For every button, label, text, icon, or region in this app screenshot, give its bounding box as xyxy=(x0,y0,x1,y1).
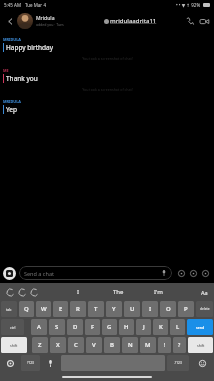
button[interactable]: Back xyxy=(3,14,17,28)
button[interactable]: Q xyxy=(19,301,34,317)
staticText: Z xyxy=(38,341,42,349)
button[interactable]: G xyxy=(102,319,117,335)
staticText: Mridula xyxy=(36,15,55,22)
staticText: MRIDULA xyxy=(3,99,21,104)
button[interactable]: Aa xyxy=(198,286,210,298)
button[interactable]: A xyxy=(31,319,47,335)
staticText: M xyxy=(145,341,151,349)
staticText: Happy birthday xyxy=(6,43,54,52)
button[interactable]: Y xyxy=(106,301,122,317)
button[interactable]: Emoji xyxy=(190,354,214,372)
button[interactable]: Stickers xyxy=(175,267,187,279)
staticText: N xyxy=(128,341,133,349)
button[interactable]: V xyxy=(86,337,102,353)
other: Voice message xyxy=(161,270,167,276)
staticText: S xyxy=(55,323,59,331)
staticText: The xyxy=(113,288,124,296)
staticText: delete xyxy=(200,307,210,311)
staticText: ME xyxy=(3,68,9,73)
button[interactable]: L xyxy=(170,319,185,335)
staticText: You took a screenshot of chat! xyxy=(82,56,133,61)
button[interactable]: Camera xyxy=(3,267,16,280)
button[interactable]: H xyxy=(119,319,134,335)
button[interactable]: U xyxy=(124,301,140,317)
staticText: H xyxy=(124,323,129,331)
staticText: X xyxy=(56,341,60,349)
button[interactable]: X xyxy=(50,337,66,353)
button[interactable]: ? xyxy=(173,337,186,353)
button[interactable]: tab xyxy=(1,301,17,317)
staticText: Q xyxy=(24,305,29,313)
staticText: R xyxy=(76,305,80,313)
staticText: MRIDULA xyxy=(3,37,21,42)
button[interactable]: Z xyxy=(32,337,48,353)
button[interactable]: W xyxy=(36,301,51,317)
button[interactable]: delete xyxy=(196,301,213,317)
button[interactable]: I'm xyxy=(138,288,178,296)
staticText: Send a chat xyxy=(24,270,54,277)
staticText: Yep xyxy=(6,105,18,114)
button[interactable]: E xyxy=(53,301,68,317)
button[interactable]: P xyxy=(178,301,194,317)
staticText: O xyxy=(166,305,171,313)
button[interactable]: ! xyxy=(158,337,171,353)
staticText: T xyxy=(94,305,98,313)
button[interactable]: N xyxy=(122,337,138,353)
staticText: ?123 xyxy=(27,361,34,365)
staticText: ! xyxy=(164,342,166,349)
staticText: E xyxy=(59,305,63,313)
button[interactable]: shift xyxy=(1,337,27,353)
button[interactable]: Video call xyxy=(197,14,211,28)
staticText: mridulaadrita11 xyxy=(110,17,157,25)
staticText: U xyxy=(130,305,135,313)
button[interactable]: R xyxy=(70,301,86,317)
staticText: B xyxy=(110,341,114,349)
staticText: 5:45 AM xyxy=(4,2,22,8)
button[interactable]: K xyxy=(153,319,168,335)
button[interactable]: O xyxy=(160,301,176,317)
button[interactable]: Sticker pack xyxy=(199,267,211,279)
button[interactable]: S xyxy=(49,319,65,335)
staticText: L xyxy=(176,323,180,331)
button[interactable]: shift xyxy=(188,337,213,353)
staticText: K xyxy=(159,323,163,331)
button[interactable]: I xyxy=(59,288,98,296)
staticText: added you · Tues xyxy=(36,22,64,27)
button[interactable]: F xyxy=(85,319,100,335)
staticText: G xyxy=(107,323,112,331)
staticText: F xyxy=(91,323,95,331)
button[interactable]: Happy birthday xyxy=(3,43,54,52)
button[interactable]: ?123 xyxy=(21,355,40,371)
button[interactable]: Undo xyxy=(4,286,16,298)
staticText: Y xyxy=(112,305,116,313)
button[interactable]: I xyxy=(142,301,158,317)
button[interactable]: ctrl xyxy=(1,319,24,335)
staticText: ? xyxy=(178,342,181,349)
staticText: tab xyxy=(6,307,12,312)
button[interactable]: Gallery xyxy=(187,267,199,279)
button[interactable]: D xyxy=(67,319,83,335)
button[interactable]: Call xyxy=(183,14,197,28)
button[interactable]: Thank you xyxy=(3,74,38,83)
button[interactable]: C xyxy=(68,337,84,353)
button[interactable]: B xyxy=(104,337,120,353)
button[interactable]: Profile photo xyxy=(17,13,33,29)
button[interactable]: Redo xyxy=(16,286,28,298)
button[interactable]: Keyboard settings xyxy=(0,354,20,372)
button[interactable]: Voice input xyxy=(41,354,60,372)
button[interactable]: send xyxy=(187,319,213,335)
staticText: C xyxy=(74,341,78,349)
button[interactable]: Clipboard xyxy=(28,286,40,298)
staticText: V xyxy=(92,341,96,349)
staticText: shift xyxy=(197,343,205,348)
button[interactable]: T xyxy=(88,301,104,317)
button[interactable]: .?123 xyxy=(167,355,189,371)
button[interactable]: Send a chat xyxy=(19,266,172,280)
button[interactable]: M xyxy=(140,337,156,353)
staticText: send xyxy=(196,325,205,330)
button[interactable]: J xyxy=(136,319,151,335)
staticText: ctrl xyxy=(10,325,16,330)
button[interactable]: The xyxy=(98,288,138,296)
button[interactable]: Yep xyxy=(3,105,18,114)
